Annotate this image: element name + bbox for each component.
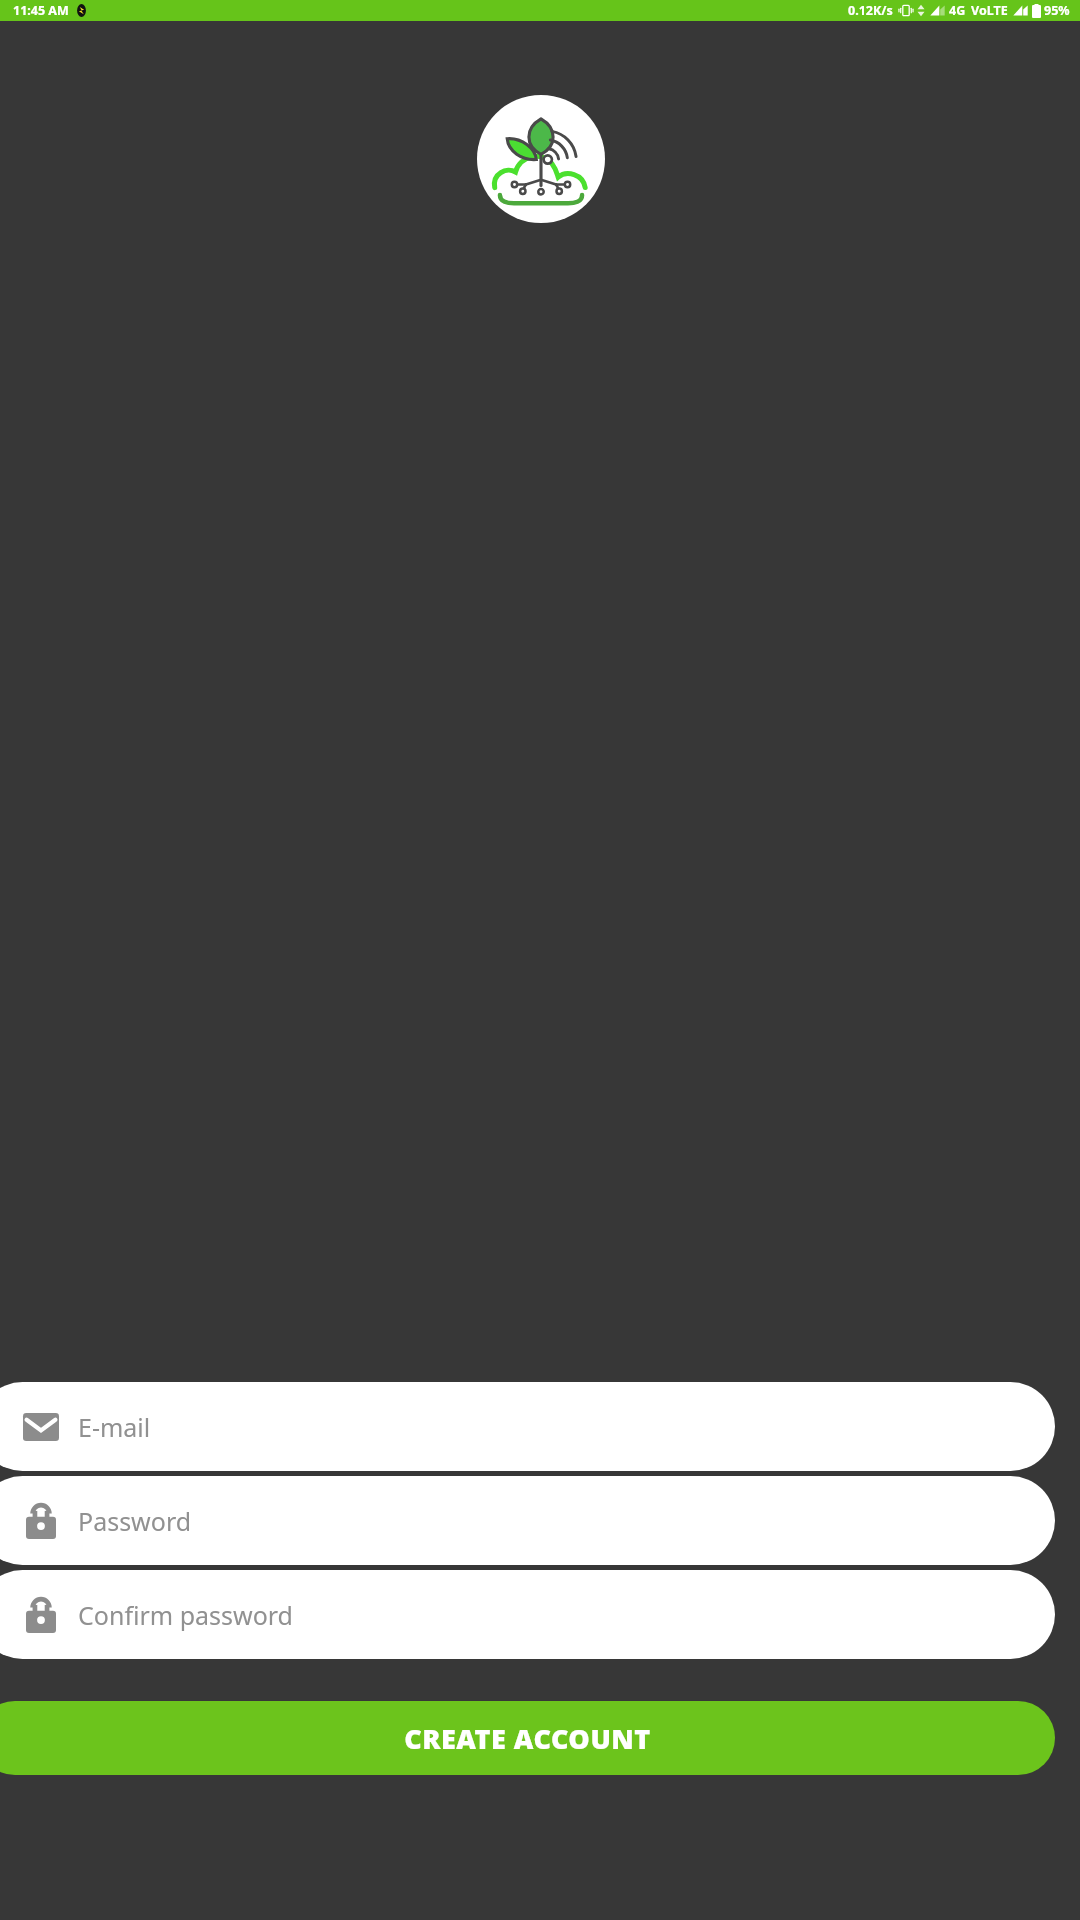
staticText: 4G [949,2,966,19]
button[interactable]: E-mail [0,1382,1055,1471]
staticText: CREATE ACCOUNT [404,1720,651,1757]
staticText: VoLTE [971,2,1008,19]
other: Password [26,1597,56,1633]
staticText: 0.12K/s [848,2,893,19]
other: Password [26,1503,56,1539]
staticText: E-mail [78,1410,151,1444]
staticText: Confirm password [78,1598,293,1632]
staticText: 95% [1044,2,1070,19]
staticText: 11:45 AM [13,2,69,19]
button[interactable]: Password [0,1476,1055,1565]
button[interactable]: CREATE ACCOUNT [0,1701,1055,1775]
staticText: Password [78,1504,192,1538]
other: E-mail [23,1413,59,1441]
button[interactable]: Password [0,1570,1055,1659]
